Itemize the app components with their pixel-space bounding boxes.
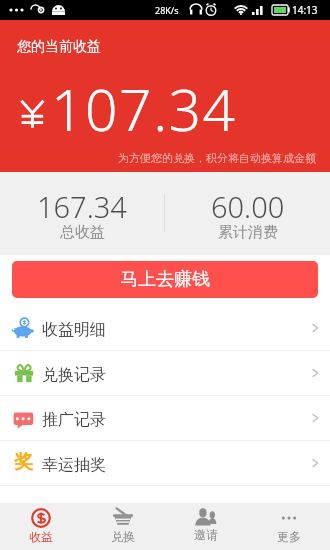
staticText: 幸运抽奖	[42, 455, 106, 475]
button[interactable]: 奖	[0, 441, 330, 485]
button[interactable]: 推广记录	[0, 396, 330, 440]
staticText: 107.34	[51, 70, 237, 148]
button[interactable]: 马上去赚钱	[12, 261, 318, 298]
button[interactable]: 收益	[0, 503, 82, 550]
staticText: 您的当前收益	[17, 38, 101, 56]
staticText: 总收益	[60, 223, 105, 242]
staticText: 累计消费	[218, 223, 278, 242]
staticText: 更多	[277, 529, 301, 544]
staticText: 收益明细	[42, 320, 106, 340]
button[interactable]: 更多	[247, 503, 330, 550]
button[interactable]: 兑换	[82, 503, 164, 550]
staticText: 为方便您的兑换，积分将自动换算成金额	[118, 151, 316, 165]
staticText: 收益	[29, 529, 53, 544]
button[interactable]: 兑换记录	[0, 351, 330, 395]
staticText: 兑换记录	[42, 365, 106, 385]
button[interactable]: 收益明细	[0, 306, 330, 350]
staticText: 邀请	[194, 527, 218, 542]
button[interactable]: 邀请	[164, 503, 247, 550]
staticText: 167.34	[37, 187, 127, 226]
staticText: 奖	[14, 450, 33, 474]
staticText: 60.00	[211, 187, 285, 226]
staticText: 28K/s	[155, 4, 179, 16]
staticText: 推广记录	[42, 410, 106, 430]
staticText: 兑换	[111, 529, 135, 544]
staticText: 14:13	[292, 3, 318, 17]
staticText: 马上去赚钱	[120, 268, 210, 291]
